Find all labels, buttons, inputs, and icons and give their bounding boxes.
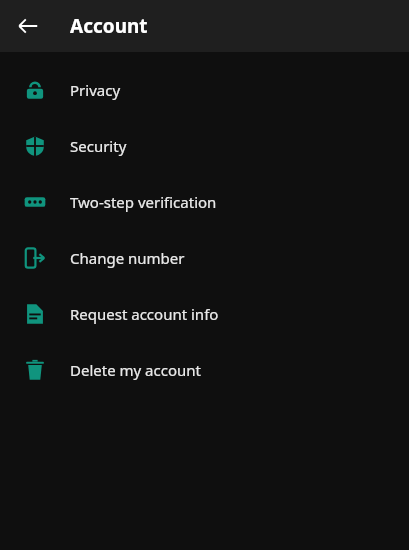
staticText: Request account info <box>70 304 219 324</box>
staticText: Privacy <box>70 80 121 100</box>
button[interactable]: Delete my account <box>0 342 409 398</box>
staticText: Change number <box>70 248 185 268</box>
button[interactable]: Security <box>0 118 409 174</box>
button[interactable]: Privacy <box>0 62 409 118</box>
button[interactable]: Back <box>8 6 48 46</box>
button[interactable]: Change number <box>0 230 409 286</box>
staticText: Security <box>70 136 127 156</box>
staticText: Two-step verification <box>70 192 217 212</box>
staticText: Account <box>70 13 148 39</box>
staticText: Delete my account <box>70 360 201 380</box>
button[interactable]: Request account info <box>0 286 409 342</box>
button[interactable]: Two-step verification <box>0 174 409 230</box>
